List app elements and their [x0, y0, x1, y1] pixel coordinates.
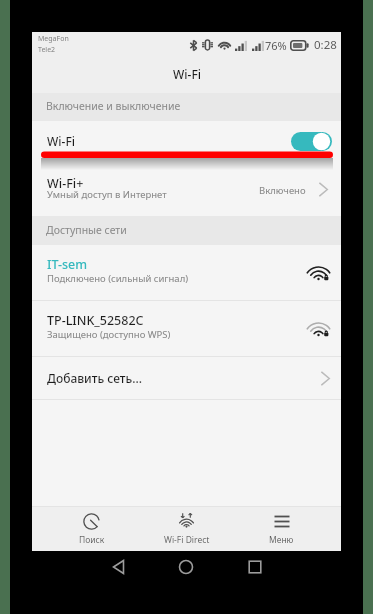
staticText: Tele2 — [38, 45, 56, 55]
other: Wi-Fi Direct — [177, 513, 196, 530]
staticText: Wi-Fi Direct — [164, 534, 210, 546]
button[interactable]: Поиск — [44, 507, 139, 551]
staticText: Wi-Fi — [173, 66, 201, 82]
staticText: Включение и выключение — [46, 99, 181, 113]
staticText: Доступные сети — [46, 223, 127, 237]
other: Поиск — [83, 513, 100, 530]
button[interactable]: Wi-Fi toggle, on — [291, 132, 332, 151]
staticText: Wi-Fi+ — [47, 175, 84, 192]
staticText: Подключено (сильный сигнал) — [47, 272, 189, 285]
button[interactable]: Добавить сеть... — [32, 357, 341, 399]
staticText: Включено — [259, 184, 306, 197]
staticText: Меню — [269, 534, 294, 546]
staticText: Поиск — [79, 534, 105, 546]
button[interactable]: TP-LINK_52582C — [32, 301, 341, 356]
other: Меню — [274, 513, 290, 530]
button[interactable]: IT-sem — [32, 245, 341, 300]
button[interactable]: Wi-Fi — [32, 121, 341, 162]
staticText: TP-LINK_52582C — [47, 312, 144, 329]
button[interactable]: Wi-Fi Direct — [139, 507, 234, 551]
button[interactable]: Wi-Fi+ — [32, 162, 341, 216]
staticText: Защищено (доступно WPS) — [47, 328, 171, 341]
staticText: MegaFon — [38, 34, 69, 44]
staticText: IT-sem — [47, 256, 88, 273]
staticText: 0:28 — [314, 37, 337, 53]
staticText: Умный доступ в Интернет — [47, 188, 167, 201]
staticText: 76% — [265, 38, 287, 53]
staticText: Wi-Fi — [47, 133, 75, 149]
staticText: Добавить сеть... — [47, 370, 143, 386]
button[interactable]: Меню — [234, 507, 329, 551]
